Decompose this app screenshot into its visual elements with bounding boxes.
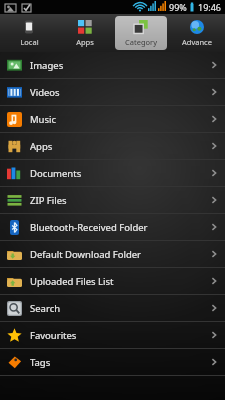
button[interactable]: Music [0,106,225,132]
staticText: Documents [30,167,209,180]
button[interactable]: Category [115,16,167,50]
button[interactable]: Videos [0,79,225,105]
button[interactable]: Images [0,52,225,78]
staticText: 19:46 [198,1,222,13]
staticText: Advance [182,37,212,47]
staticText: Favourites [30,329,209,342]
button[interactable]: Apps [0,133,225,159]
staticText: Videos [30,86,209,99]
staticText: Tags [30,356,209,369]
staticText: Default Download Folder [30,248,209,261]
staticText: Local [20,37,39,47]
button[interactable]: Tags [0,349,225,375]
button[interactable]: Local [3,16,55,50]
button[interactable]: Advance [171,16,223,50]
staticText: Uploaded Files List [30,275,209,288]
button[interactable]: Search [0,295,225,321]
button[interactable]: Apps [59,16,111,50]
button[interactable]: Documents [0,160,225,186]
button[interactable]: Favourites [0,322,225,348]
staticText: Bluetooth-Received Folder [30,221,209,234]
button[interactable]: Uploaded Files List [0,268,225,294]
staticText: Apps [30,140,209,153]
button[interactable]: ZIP Files [0,187,225,213]
staticText: Apps [76,37,94,47]
button[interactable]: Bluetooth-Received Folder [0,214,225,240]
staticText: 99% [169,1,187,13]
staticText: Search [30,302,209,315]
staticText: Images [30,59,209,72]
staticText: Music [30,113,209,126]
staticText: Category [125,37,157,47]
staticText: ZIP Files [30,194,209,207]
button[interactable]: Default Download Folder [0,241,225,267]
